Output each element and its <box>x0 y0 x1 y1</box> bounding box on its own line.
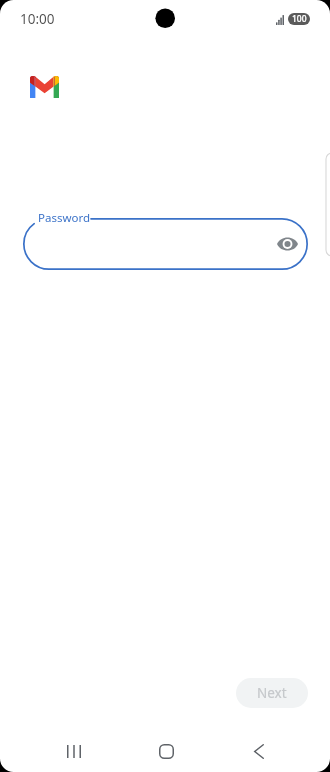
button[interactable]: Next <box>236 678 308 708</box>
staticText: Next <box>257 684 287 702</box>
button[interactable]: Show password <box>273 230 301 258</box>
button[interactable]: Back <box>235 731 283 771</box>
staticText: Password <box>38 210 91 226</box>
button[interactable]: Password <box>23 218 308 270</box>
button[interactable]: Home <box>142 731 190 771</box>
staticText: 100 <box>292 13 307 25</box>
button[interactable]: Recent apps <box>50 731 98 771</box>
staticText: 10:00 <box>20 10 55 28</box>
